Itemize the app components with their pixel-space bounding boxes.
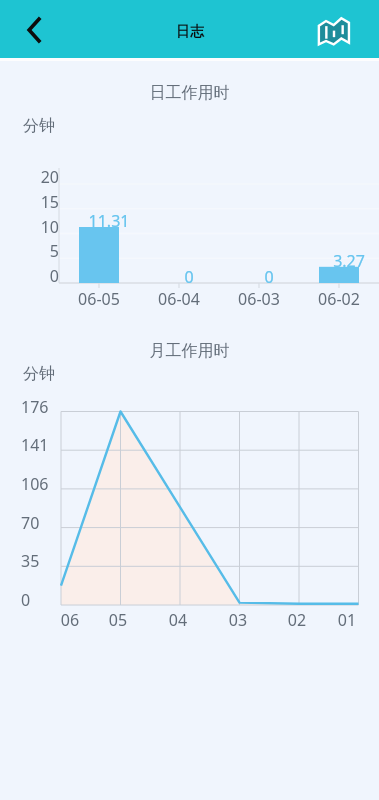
staticText: 3.27 — [309, 250, 379, 272]
staticText: 11.31 — [69, 210, 149, 232]
staticText: 0 — [9, 265, 59, 287]
staticText: 35 — [21, 550, 40, 572]
staticText: 20 — [9, 166, 59, 188]
staticText: 10 — [9, 216, 59, 238]
staticText: 06-03 — [219, 288, 299, 310]
staticText: 分钟 — [23, 364, 55, 384]
staticText: 106 — [21, 473, 49, 495]
staticText: 15 — [9, 191, 59, 213]
staticText: 0 — [149, 266, 229, 288]
staticText: 月工作用时 — [0, 341, 379, 361]
staticText: 141 — [21, 434, 49, 456]
staticText: 06-05 — [59, 288, 139, 310]
staticText: 01 — [322, 609, 372, 631]
button[interactable]: Back — [10, 6, 56, 52]
staticText: 日工作用时 — [0, 83, 379, 103]
staticText: 02 — [272, 609, 322, 631]
staticText: 日志 — [176, 23, 204, 41]
staticText: 176 — [21, 396, 49, 418]
staticText: 05 — [93, 609, 143, 631]
staticText: 5 — [9, 240, 59, 262]
staticText: 04 — [153, 609, 203, 631]
staticText: 06-04 — [139, 288, 219, 310]
staticText: 06 — [45, 609, 95, 631]
staticText: 0 — [21, 589, 31, 611]
staticText: 06-02 — [299, 288, 379, 310]
staticText: 分钟 — [23, 116, 55, 136]
staticText: 0 — [229, 266, 309, 288]
button[interactable]: Map — [311, 6, 357, 52]
staticText: 03 — [213, 609, 263, 631]
staticText: 70 — [21, 512, 40, 534]
